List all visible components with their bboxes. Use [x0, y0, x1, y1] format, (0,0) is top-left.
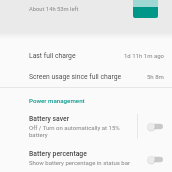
button[interactable]: Last full charge — [0, 45, 172, 66]
staticText: About 14h 53m left — [29, 6, 79, 13]
staticText: 1d 11h 1m ago — [124, 52, 164, 59]
button[interactable]: Battery saver — [0, 115, 137, 138]
staticText: Battery saver — [29, 115, 70, 123]
staticText: Off / Turn on automatically at 15% batte… — [29, 124, 123, 138]
staticText: Last full charge — [29, 52, 76, 60]
button[interactable]: Battery saver switch, off — [138, 110, 172, 143]
staticText: Screen usage since full charge — [29, 73, 122, 81]
staticText: Show battery percentage in status bar — [29, 159, 130, 166]
button[interactable]: Battery percentage switch, off — [138, 141, 172, 172]
staticText: 5h 8m — [147, 73, 164, 80]
button[interactable]: Battery percentage — [0, 141, 172, 172]
staticText: Battery percentage — [29, 150, 87, 158]
button[interactable]: Screen usage since full charge — [0, 66, 172, 87]
staticText: Power management — [29, 97, 85, 104]
